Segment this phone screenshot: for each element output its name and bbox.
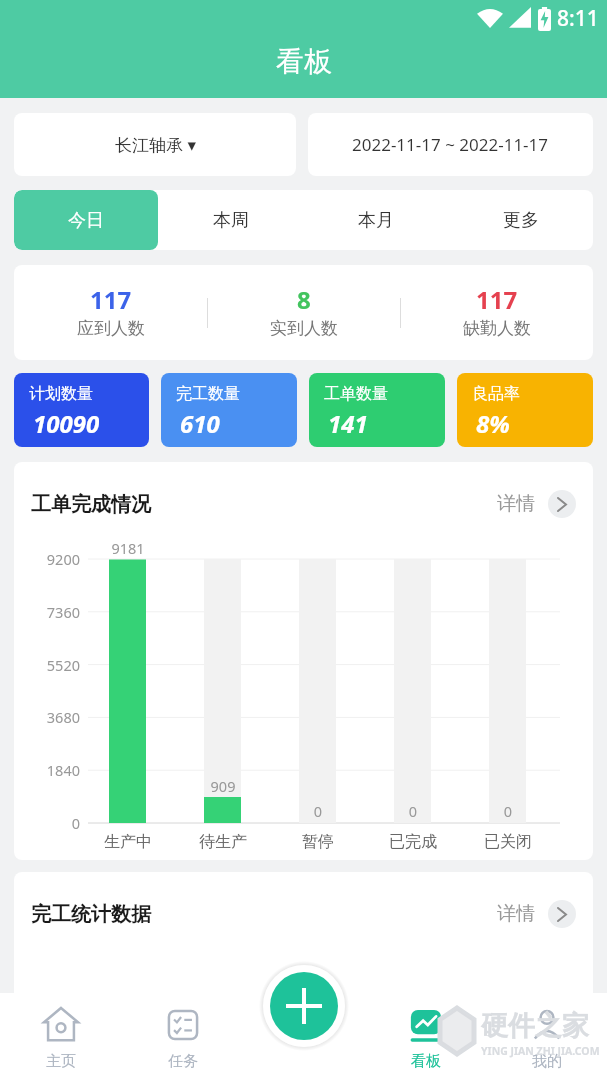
staticText: 缺勤人数 xyxy=(463,318,531,339)
staticText: 看板 xyxy=(276,44,332,79)
staticText: 5520 xyxy=(36,655,80,675)
button[interactable]: 2022-11-17 ~ 2022-11-17 xyxy=(308,113,593,176)
staticText: 0 xyxy=(478,801,538,821)
button[interactable]: 117 xyxy=(401,265,593,360)
staticText: 看板 xyxy=(411,1052,441,1071)
button[interactable]: 今日 xyxy=(14,190,158,250)
staticText: 9181 xyxy=(98,538,158,558)
staticText: 已关闭 xyxy=(468,832,548,852)
staticText: 完工统计数据 xyxy=(31,902,151,927)
staticText: 本月 xyxy=(358,209,394,232)
button[interactable]: 任务 xyxy=(122,993,244,1080)
button[interactable]: 详情 xyxy=(497,490,576,518)
staticText: 9200 xyxy=(36,549,80,569)
staticText: 应到人数 xyxy=(77,318,145,339)
button[interactable]: 我的 xyxy=(486,993,607,1080)
button[interactable]: 8 xyxy=(208,265,400,360)
staticText: 8 xyxy=(297,283,311,316)
staticText: YING JIAN ZHI JIA.COM xyxy=(481,1044,600,1058)
staticText: 8% xyxy=(476,407,510,440)
staticText: 141 xyxy=(328,407,368,440)
staticText: 已完成 xyxy=(373,832,453,852)
button[interactable]: 详情 xyxy=(497,900,576,928)
staticText: 7360 xyxy=(36,602,80,622)
button[interactable]: 良品率 xyxy=(457,373,593,447)
staticText: 计划数量 xyxy=(29,384,93,404)
staticText: 更多 xyxy=(503,209,539,232)
staticText: 1840 xyxy=(36,760,80,780)
staticText: 0 xyxy=(36,813,80,833)
button[interactable]: 117 xyxy=(14,265,207,360)
staticText: 10090 xyxy=(33,407,100,440)
staticText: 117 xyxy=(90,283,132,316)
button[interactable]: 完工数量 xyxy=(161,373,297,447)
staticText: 2022-11-17 ~ 2022-11-17 xyxy=(352,133,549,156)
button[interactable]: 看板 xyxy=(365,993,486,1080)
staticText: 硬件之家 xyxy=(481,1009,589,1043)
button[interactable]: 本周 xyxy=(158,190,303,250)
staticText: 主页 xyxy=(46,1052,76,1071)
staticText: 117 xyxy=(476,283,518,316)
button[interactable]: 工单数量 xyxy=(309,373,445,447)
staticText: 任务 xyxy=(168,1052,198,1071)
staticText: 我的 xyxy=(532,1052,562,1071)
staticText: 待生产 xyxy=(183,832,263,852)
staticText: 良品率 xyxy=(472,384,520,404)
staticText: 长江轴承 ▾ xyxy=(115,133,196,156)
staticText: 实到人数 xyxy=(270,318,338,339)
button[interactable]: 本月 xyxy=(303,190,448,250)
button[interactable]: 更多 xyxy=(448,190,593,250)
staticText: 详情 xyxy=(497,492,535,516)
button[interactable] xyxy=(270,972,338,1040)
staticText: 909 xyxy=(193,776,253,796)
staticText: 8:11 xyxy=(557,4,599,33)
staticText: 工单数量 xyxy=(324,384,388,404)
staticText: 今日 xyxy=(68,209,104,232)
staticText: 3680 xyxy=(36,707,80,727)
staticText: 完工数量 xyxy=(176,384,240,404)
button[interactable]: 主页 xyxy=(0,993,122,1080)
button[interactable]: 计划数量 xyxy=(14,373,149,447)
staticText: 0 xyxy=(383,801,443,821)
staticText: 工单完成情况 xyxy=(31,492,151,517)
staticText: 详情 xyxy=(497,902,535,926)
staticText: 暂停 xyxy=(278,832,358,852)
button[interactable]: 长江轴承 ▾ xyxy=(14,113,296,176)
staticText: 生产中 xyxy=(88,832,168,852)
staticText: 610 xyxy=(180,407,220,440)
staticText: 0 xyxy=(288,801,348,821)
staticText: 本周 xyxy=(213,209,249,232)
